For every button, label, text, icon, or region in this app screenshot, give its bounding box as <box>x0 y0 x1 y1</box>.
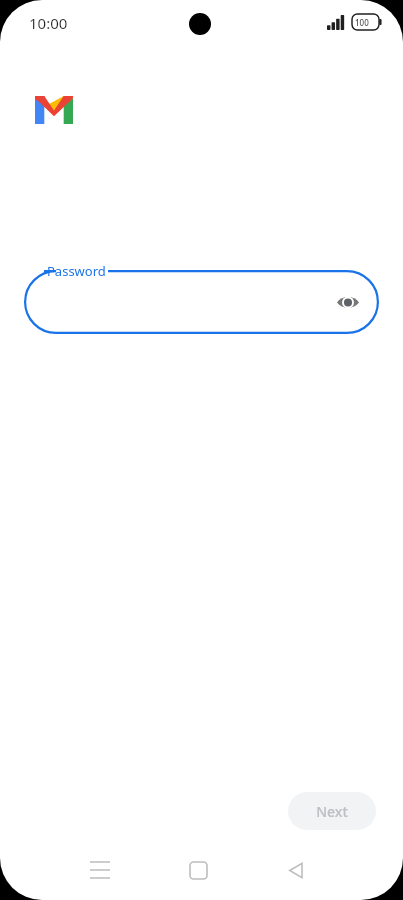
button[interactable]: Next <box>288 792 376 830</box>
staticText: Password <box>47 262 106 280</box>
button[interactable]: Back <box>274 848 318 892</box>
staticText: 100 <box>355 17 369 28</box>
button[interactable]: Password <box>24 270 379 334</box>
button[interactable]: Recent apps <box>78 848 122 892</box>
button[interactable]: Show password <box>331 285 365 319</box>
button[interactable]: Home <box>176 848 220 892</box>
staticText: Next <box>316 802 348 821</box>
staticText: 10:00 <box>29 13 68 33</box>
